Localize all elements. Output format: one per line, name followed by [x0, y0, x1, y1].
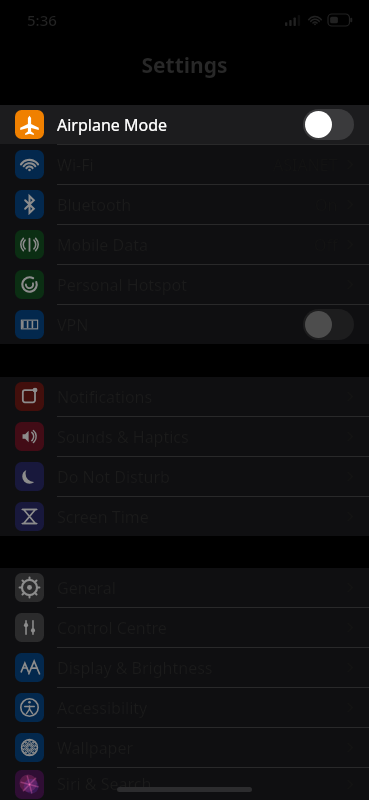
staticText: General	[57, 577, 116, 599]
staticText: Personal Hotspot	[57, 274, 188, 296]
staticText: Wallpaper	[57, 737, 134, 759]
button[interactable]: Wallpaper	[0, 728, 369, 767]
staticText: Settings	[141, 51, 228, 80]
staticText: Display & Brightness	[57, 657, 213, 679]
button[interactable]: Siri & Search	[0, 768, 369, 800]
button[interactable]: Bluetooth	[0, 185, 369, 224]
staticText: 5:36	[27, 10, 57, 30]
button[interactable]: Notifications	[0, 377, 369, 416]
staticText: Bluetooth	[57, 194, 132, 216]
button[interactable]: Screen Time	[0, 497, 369, 536]
button[interactable]: Display & Brightness	[0, 648, 369, 687]
staticText: Wi-Fi	[57, 154, 94, 176]
button[interactable]: Airplane Mode toggle	[303, 109, 354, 140]
staticText: VPN	[57, 314, 89, 336]
staticText: Airplane Mode	[57, 114, 168, 136]
staticText: Mobile Data	[57, 234, 148, 256]
button[interactable]: Accessibility	[0, 688, 369, 727]
button[interactable]: VPN	[0, 305, 369, 344]
button[interactable]: Airplane Mode	[0, 105, 369, 144]
button[interactable]: General	[0, 568, 369, 607]
staticText: Siri & Search	[57, 773, 152, 795]
staticText: Do Not Disturb	[57, 466, 170, 488]
button[interactable]: Control Centre	[0, 608, 369, 647]
button[interactable]: Do Not Disturb	[0, 457, 369, 496]
button[interactable]: Personal Hotspot	[0, 265, 369, 304]
button[interactable]: Wi-Fi	[0, 145, 369, 184]
button[interactable]: VPN toggle	[303, 309, 354, 340]
button[interactable]: Sounds & Haptics	[0, 417, 369, 456]
button[interactable]: Mobile Data	[0, 225, 369, 264]
